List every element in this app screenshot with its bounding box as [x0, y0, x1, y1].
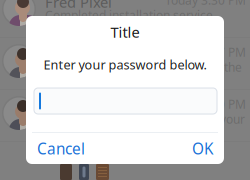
button[interactable]: OK — [173, 133, 224, 164]
staticText: Today 3:30 PM — [165, 0, 246, 8]
staticText: Fred Pixel — [45, 0, 112, 12]
staticText: Title — [110, 22, 139, 42]
button[interactable]: Marc Oliver — [0, 90, 250, 141]
staticText: Today 2:17 PM — [165, 44, 246, 60]
staticText: OK — [192, 138, 213, 159]
button[interactable]: Cancel — [26, 133, 107, 164]
button[interactable] — [60, 163, 109, 180]
button[interactable]: Fred Pixel — [0, 0, 250, 37]
staticText: Anna Stone — [45, 44, 123, 64]
staticText: Sent over the revised quote for your rev… — [45, 111, 245, 144]
staticText: Thanks for the fast response on the tick… — [45, 59, 242, 92]
staticText: Cancel — [37, 138, 85, 159]
staticText: Marc Oliver — [45, 96, 123, 116]
staticText: Enter your password below. — [43, 56, 206, 73]
button[interactable]: Anna Stone — [0, 38, 250, 89]
staticText: Completed installation service. Everythi… — [45, 7, 219, 40]
staticText: Today 1:10 PM — [165, 96, 246, 112]
